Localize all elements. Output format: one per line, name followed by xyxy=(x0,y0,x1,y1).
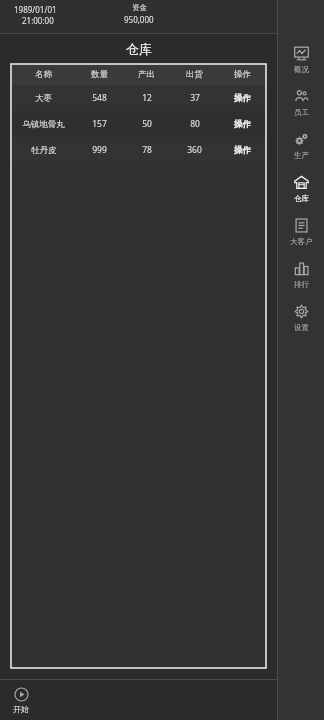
staticText: 开始 xyxy=(13,704,29,714)
staticText: 操作 xyxy=(234,119,251,130)
button[interactable]: 开始 xyxy=(10,684,32,717)
staticText: 名称 xyxy=(35,69,52,80)
staticText: 大枣 xyxy=(35,93,52,104)
staticText: 生产 xyxy=(294,151,309,160)
staticText: 157 xyxy=(92,118,107,130)
button[interactable]: 仓库 xyxy=(278,167,324,210)
staticText: 操作 xyxy=(234,145,251,156)
staticText: 产出 xyxy=(138,69,155,80)
staticText: 操作 xyxy=(234,93,251,104)
staticText: 12 xyxy=(142,92,152,104)
button[interactable]: 设置 xyxy=(278,296,324,339)
staticText: 排行 xyxy=(294,280,309,289)
staticText: 大客户 xyxy=(290,237,313,246)
staticText: 出货 xyxy=(186,69,203,80)
staticText: 360 xyxy=(187,144,202,156)
staticText: 仓库 xyxy=(126,41,152,57)
staticText: 950,000 xyxy=(124,14,154,25)
button[interactable]: 排行 xyxy=(278,253,324,296)
staticText: 操作 xyxy=(234,69,251,80)
staticText: 50 xyxy=(142,118,152,130)
button[interactable]: 生产 xyxy=(278,124,324,167)
button[interactable]: 大客户 xyxy=(278,210,324,253)
button[interactable]: 操作 xyxy=(219,137,266,163)
staticText: 员工 xyxy=(294,108,309,117)
staticText: 乌镇地骨丸 xyxy=(22,119,65,130)
staticText: 资金 xyxy=(132,3,147,12)
button[interactable]: 员工 xyxy=(278,81,324,124)
button[interactable]: 操作 xyxy=(219,85,266,111)
staticText: 数量 xyxy=(91,69,108,80)
staticText: 999 xyxy=(92,144,107,156)
staticText: 牡丹皮 xyxy=(31,145,57,156)
staticText: 概况 xyxy=(294,65,309,74)
staticText: 仓库 xyxy=(294,194,309,203)
staticText: 21:00:00 xyxy=(22,15,54,26)
button[interactable]: 概况 xyxy=(278,38,324,81)
staticText: 37 xyxy=(190,92,200,104)
button[interactable]: 操作 xyxy=(219,111,266,137)
staticText: 548 xyxy=(92,92,107,104)
staticText: 78 xyxy=(142,144,152,156)
staticText: 设置 xyxy=(294,323,309,332)
staticText: 1989/01/01 xyxy=(14,4,57,15)
staticText: 80 xyxy=(190,118,200,130)
